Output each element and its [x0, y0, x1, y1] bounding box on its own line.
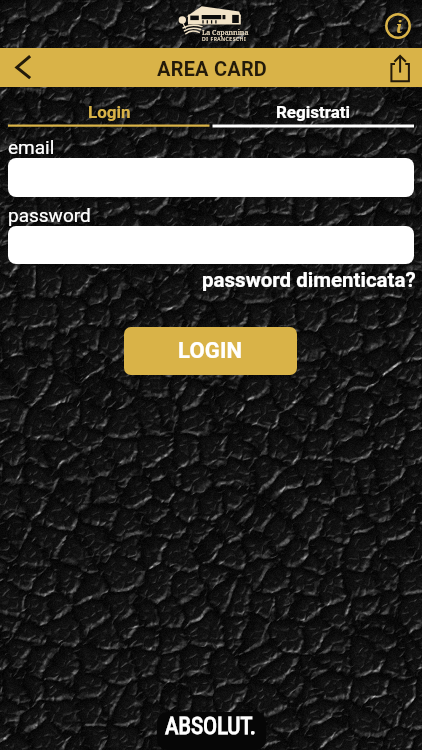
staticText: La Capannina [202, 28, 249, 38]
staticText: AREA CARD [157, 57, 268, 80]
button[interactable]: LOGIN [124, 327, 297, 375]
button[interactable]: Share [382, 48, 422, 87]
staticText: Login [88, 102, 131, 122]
staticText: LOGIN [178, 338, 243, 364]
button[interactable]: Login [8, 95, 210, 130]
staticText: i [396, 15, 403, 38]
button[interactable]: Back [0, 48, 46, 87]
button[interactable]: password dimenticata? [202, 268, 416, 292]
button[interactable] [8, 158, 414, 197]
staticText: password [8, 204, 91, 226]
staticText: ABSOLUT. [165, 712, 256, 740]
staticText: email [8, 136, 55, 158]
button[interactable]: Registrati [212, 95, 414, 130]
staticText: DI FRANCESCHI [202, 36, 247, 43]
button[interactable] [8, 226, 414, 264]
button[interactable]: Info [385, 13, 411, 39]
staticText: Registrati [276, 102, 351, 122]
